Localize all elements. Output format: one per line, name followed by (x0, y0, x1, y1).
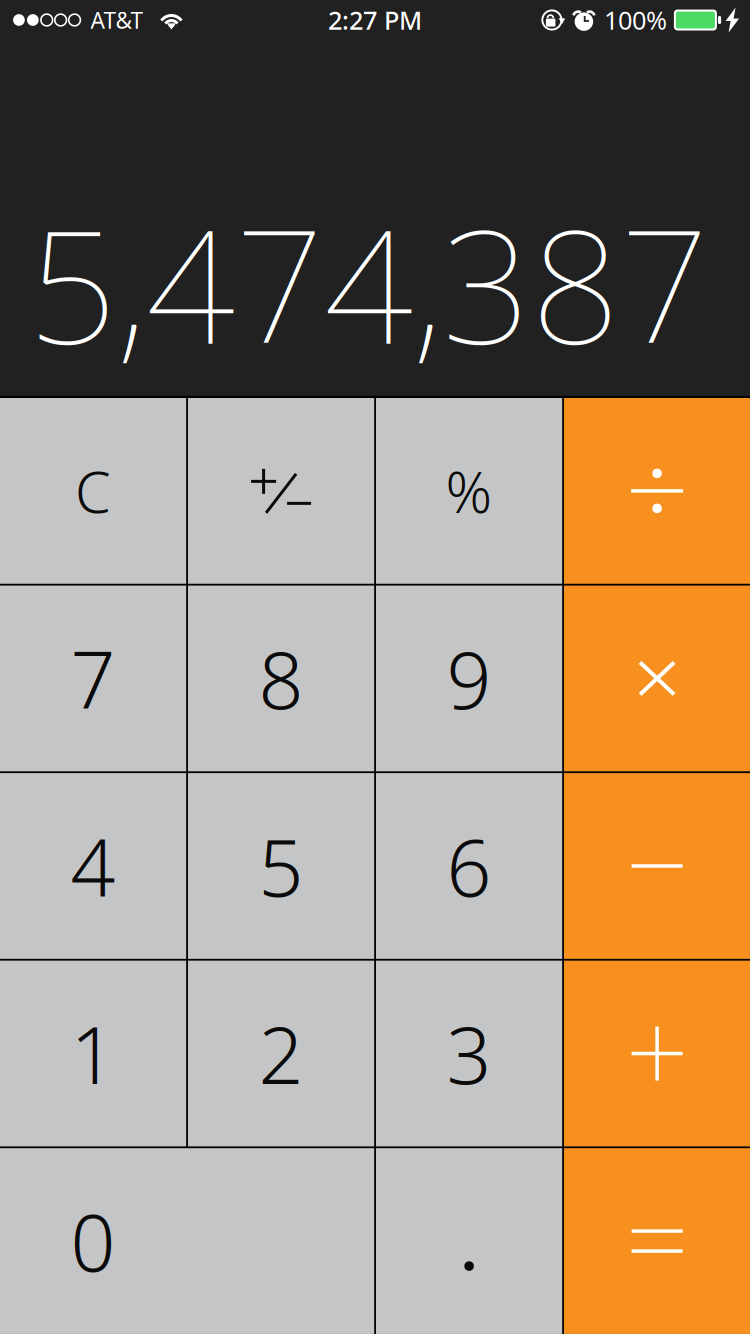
staticText: 1 (71, 1001, 116, 1106)
button[interactable]: Minus (564, 773, 750, 959)
button[interactable]: 5 (188, 773, 374, 959)
staticText: 6 (447, 814, 492, 918)
button[interactable]: Multiply (564, 585, 750, 771)
staticText: 2 (259, 1001, 304, 1106)
button[interactable]: 8 (188, 585, 374, 771)
staticText: 5 (259, 814, 304, 918)
button[interactable]: 7 (0, 585, 186, 771)
button[interactable]: Plus minus (188, 398, 374, 584)
button[interactable]: Plus (564, 961, 750, 1146)
staticText: 9 (447, 626, 492, 731)
staticText: AT&T (90, 5, 143, 35)
staticText: C (75, 453, 111, 529)
button[interactable]: Clear (0, 398, 186, 584)
staticText: 0 (71, 1189, 116, 1293)
staticText: 4 (71, 814, 116, 918)
staticText: 5,474,387 (28, 176, 709, 389)
button[interactable]: Decimal point (376, 1148, 562, 1334)
button[interactable]: 2 (188, 961, 374, 1146)
button[interactable]: Equals (564, 1148, 750, 1334)
button[interactable]: 9 (376, 585, 562, 771)
button[interactable]: Divide (564, 398, 750, 584)
staticText: 8 (259, 626, 304, 731)
button[interactable]: 0 (0, 1148, 374, 1334)
staticText: 7 (71, 626, 116, 731)
staticText: 3 (447, 1001, 492, 1106)
staticText: 2:27 PM (328, 3, 422, 37)
button[interactable]: Percent (376, 398, 562, 584)
button[interactable]: 4 (0, 773, 186, 959)
staticText: % (446, 453, 493, 529)
button[interactable]: 1 (0, 961, 186, 1146)
button[interactable]: 3 (376, 961, 562, 1146)
staticText: 100% (604, 3, 667, 37)
button[interactable]: 6 (376, 773, 562, 959)
